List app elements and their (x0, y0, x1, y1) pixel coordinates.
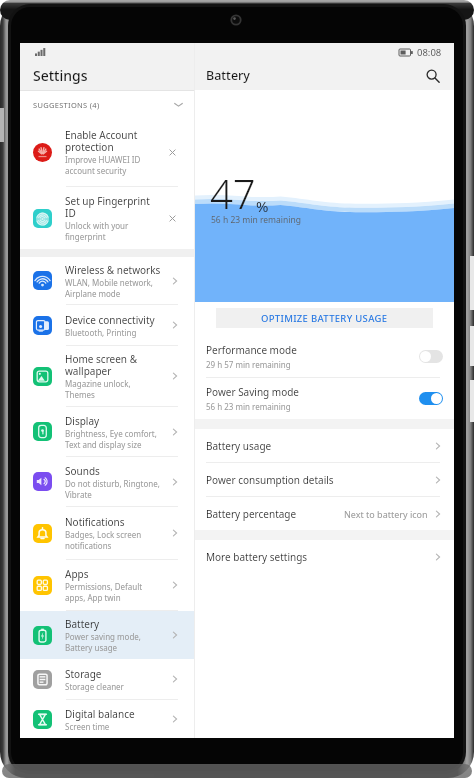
staticText: Settings (33, 66, 88, 85)
staticText: Improve HUAWEI ID account security (65, 154, 141, 176)
button[interactable]: Dismiss suggestion (166, 212, 179, 225)
staticText: Performance mode (206, 343, 297, 357)
staticText: 29 h 57 min remaining (206, 359, 291, 370)
button[interactable]: Search (418, 61, 448, 90)
staticText: OPTIMIZE BATTERY USAGE (261, 312, 388, 325)
staticText: Power Saving mode (206, 385, 300, 399)
button[interactable]: Home screen & wallpaper (20, 346, 194, 406)
staticText: Battery usage (206, 439, 272, 453)
staticText: 08:08 (417, 46, 442, 59)
staticText: 47 (210, 166, 256, 220)
staticText: Notifications (65, 515, 125, 529)
staticText: Brightness, Eye comfort, Text and displa… (65, 428, 157, 450)
button[interactable]: More battery settings (195, 540, 454, 573)
staticText: More battery settings (206, 550, 308, 564)
staticText: Unlock with your fingerprint (65, 220, 129, 242)
staticText: % (256, 196, 269, 216)
button[interactable]: Set up Fingerprint ID (20, 187, 194, 249)
staticText: Enable Account protection (65, 128, 138, 154)
staticText: Battery (206, 67, 250, 84)
staticText: Set up Fingerprint ID (65, 194, 150, 220)
staticText: Sounds (65, 464, 100, 478)
staticText: Storage (65, 667, 102, 681)
staticText: Badges, Lock screen notifications (65, 529, 142, 551)
staticText: Digital balance (65, 707, 135, 721)
button[interactable]: Storage (20, 659, 194, 699)
staticText: Battery percentage (206, 507, 297, 521)
staticText: SUGGESTIONS (4) (33, 100, 100, 110)
staticText: Screen time (65, 721, 110, 732)
button[interactable]: OPTIMIZE BATTERY USAGE (216, 308, 433, 328)
button[interactable]: Display (20, 407, 194, 456)
button[interactable]: Notifications (20, 507, 194, 559)
staticText: Magazine unlock, Themes (65, 378, 131, 400)
button[interactable]: Battery (20, 611, 194, 659)
staticText: Power saving mode, Battery usage (65, 631, 141, 653)
staticText: 56 h 23 min remaining (206, 401, 291, 412)
button[interactable]: Digital balance (20, 700, 194, 738)
button[interactable]: Sounds (20, 457, 194, 506)
staticText: WLAN, Mobile network, Airplane mode (65, 277, 153, 299)
button[interactable]: Enable Account protection (20, 118, 194, 186)
staticText: Next to battery icon (344, 508, 428, 520)
button[interactable]: Wireless & networks (20, 257, 194, 304)
staticText: Device connectivity (65, 313, 155, 327)
staticText: Apps (65, 567, 89, 581)
button[interactable]: Power Saving mode (195, 378, 454, 419)
staticText: Permissions, Default apps, App twin (65, 581, 143, 603)
staticText: 56 h 23 min remaining (211, 214, 301, 226)
button[interactable]: Battery percentage (195, 497, 454, 530)
staticText: Battery (65, 617, 100, 631)
staticText: Power consumption details (206, 473, 334, 487)
staticText: Home screen & wallpaper (65, 352, 137, 378)
staticText: Do not disturb, Ringtone, Vibrate (65, 478, 160, 500)
button[interactable]: Power consumption details (195, 463, 454, 496)
staticText: Bluetooth, Printing (65, 327, 137, 338)
staticText: Wireless & networks (65, 263, 161, 277)
button[interactable]: Device connectivity (20, 305, 194, 345)
button[interactable]: Battery usage (195, 429, 454, 462)
staticText: Display (65, 414, 100, 428)
staticText: Storage cleaner (65, 681, 124, 692)
button[interactable]: Apps (20, 560, 194, 610)
button[interactable]: Performance mode (195, 336, 454, 377)
button[interactable]: Dismiss suggestion (166, 146, 179, 159)
button[interactable]: SUGGESTIONS (4) (20, 91, 194, 118)
